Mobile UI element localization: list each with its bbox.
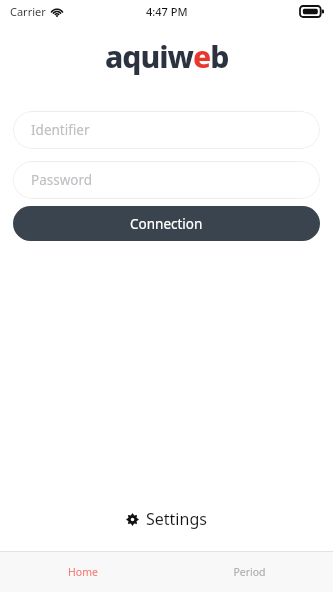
button[interactable]: Identifier (13, 111, 320, 149)
button[interactable]: Connection (13, 206, 320, 241)
button[interactable]: Password (13, 161, 320, 199)
staticText: Identifier (31, 121, 90, 139)
staticText: Connection (130, 215, 203, 233)
button[interactable]: Settings (116, 504, 217, 534)
staticText: Home (68, 565, 98, 579)
button[interactable]: Period (166, 552, 333, 592)
staticText: Carrier (10, 4, 46, 19)
staticText: Period (233, 565, 266, 579)
other: Settings (126, 513, 139, 526)
staticText: Password (31, 171, 93, 189)
staticText: aquiweb (105, 36, 229, 77)
staticText: 4:47 PM (146, 4, 188, 19)
staticText: Settings (146, 508, 207, 530)
button[interactable]: Home (0, 552, 166, 592)
